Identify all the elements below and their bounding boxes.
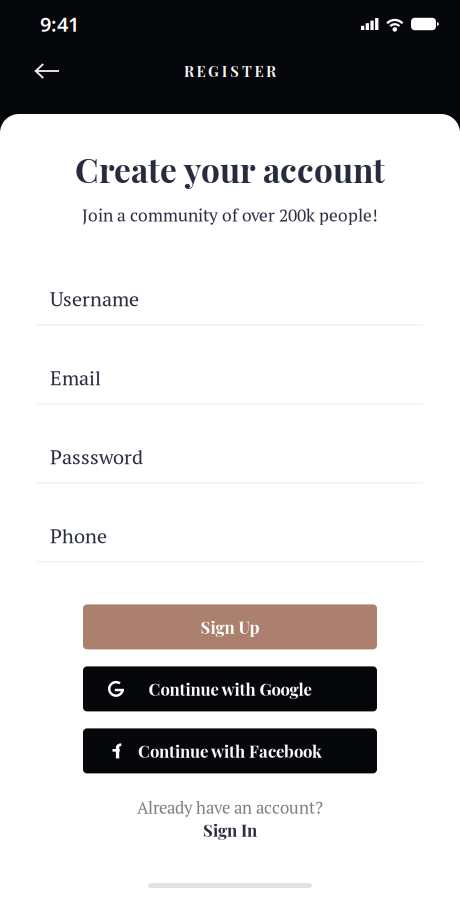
button[interactable]: Username: [37, 246, 423, 325]
staticText: Phone: [50, 522, 107, 549]
button[interactable]: Already have an account?: [137, 796, 323, 841]
staticText: Create your account: [75, 147, 385, 191]
staticText: 9:41: [40, 11, 79, 37]
button[interactable]: Continue with Google: [83, 666, 377, 711]
button[interactable]: Sign Up: [83, 604, 377, 649]
button[interactable]: Email: [37, 325, 423, 404]
button[interactable]: Passsword: [37, 404, 423, 483]
staticText: Sign Up: [200, 616, 259, 638]
staticText: Continue with Google: [148, 678, 311, 700]
staticText: Continue with Facebook: [138, 740, 322, 762]
button[interactable]: Continue with Facebook: [83, 728, 377, 773]
staticText: Email: [50, 364, 101, 391]
staticText: REGISTER: [184, 61, 276, 81]
staticText: Already have an account?: [137, 796, 323, 819]
staticText: Join a community of over 200k people!: [82, 203, 378, 226]
button[interactable]: Back: [23, 52, 69, 90]
staticText: Username: [50, 285, 139, 312]
button[interactable]: Phone: [37, 483, 423, 562]
staticText: Sign In: [203, 819, 257, 841]
staticText: Passsword: [50, 443, 143, 470]
